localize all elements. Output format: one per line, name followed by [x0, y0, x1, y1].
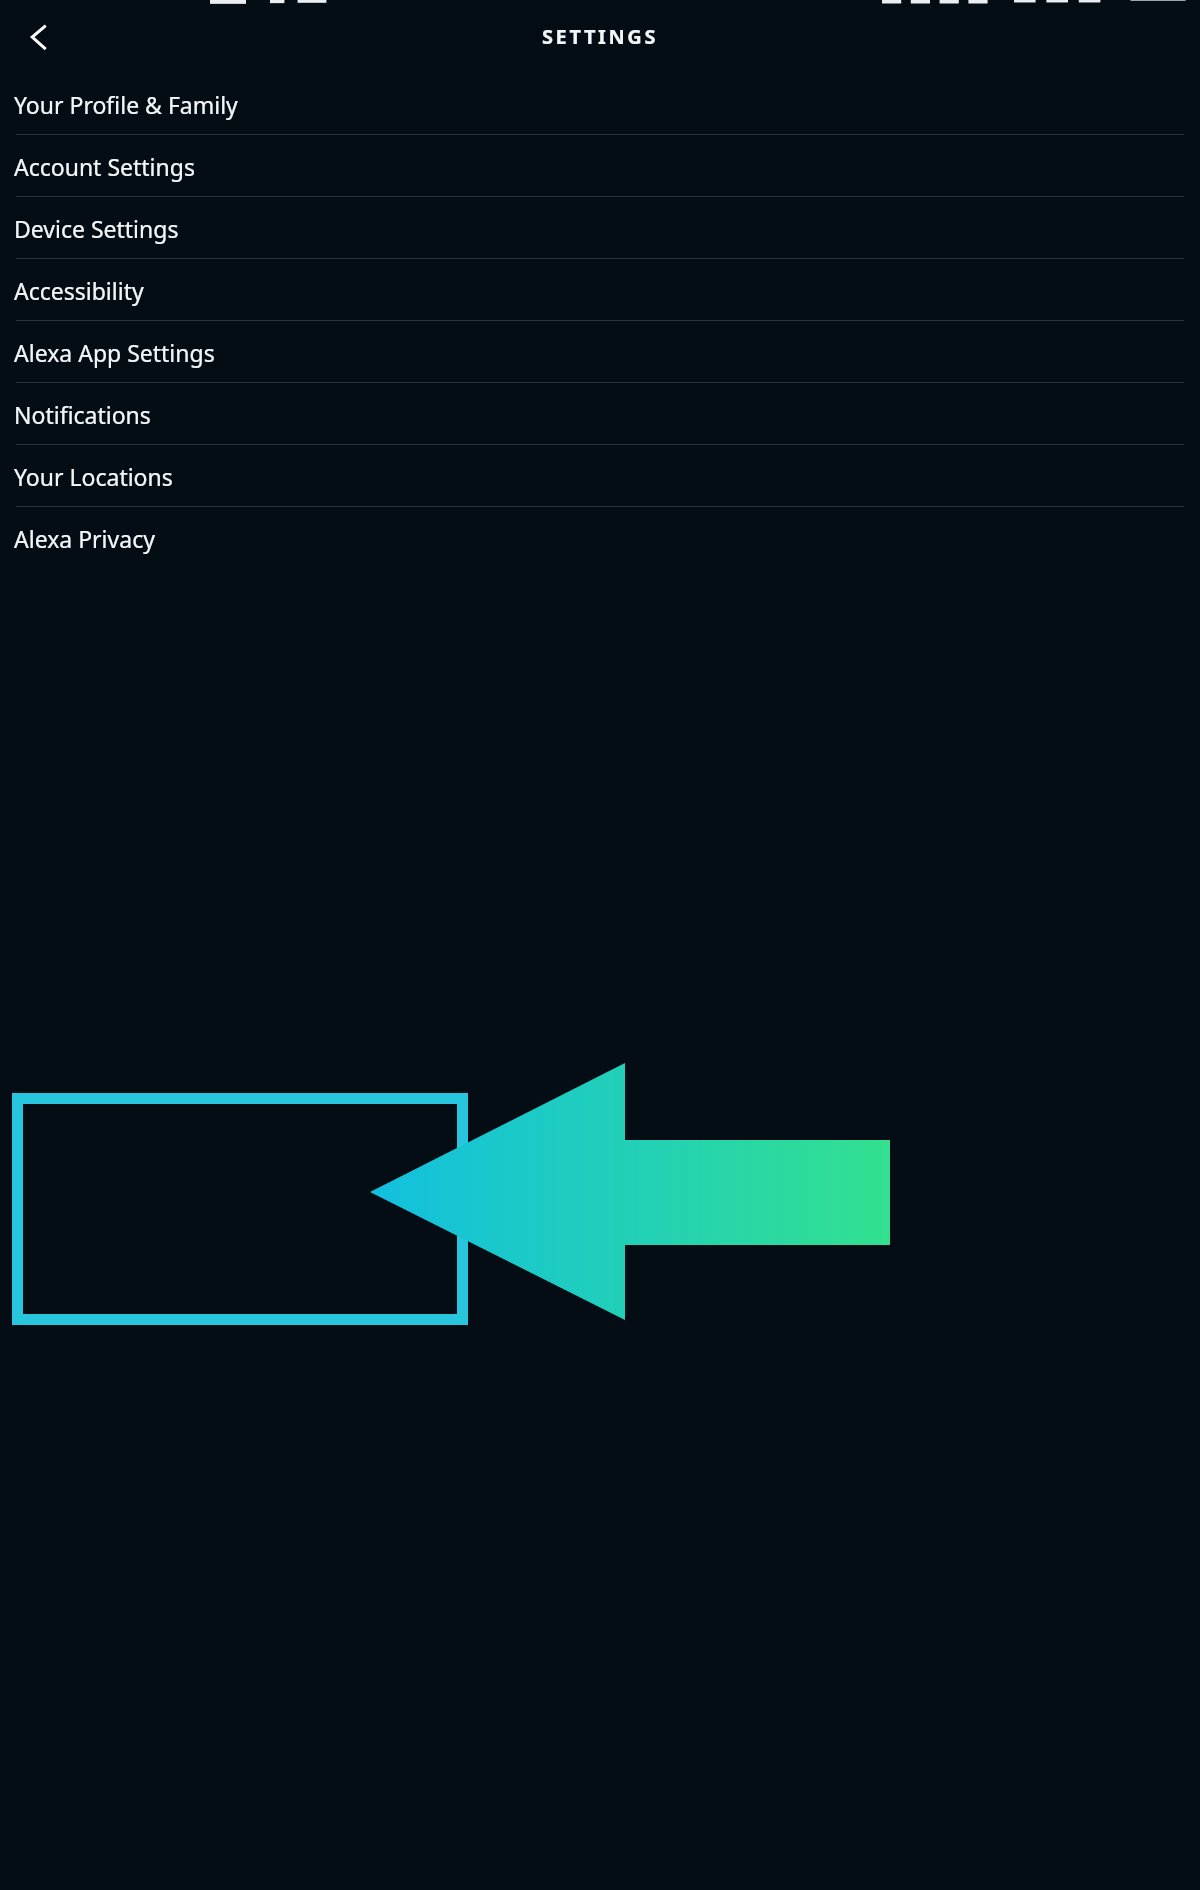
staticText: Alexa App Settings — [14, 337, 215, 368]
button[interactable]: Alexa Privacy — [0, 507, 1200, 569]
button[interactable]: Notifications — [0, 383, 1200, 445]
staticText: Notifications — [14, 399, 151, 430]
staticText: Alexa Privacy — [14, 523, 155, 554]
staticText: Account Settings — [14, 151, 195, 182]
button[interactable]: Device Settings — [0, 197, 1200, 259]
staticText: Your Profile & Family — [14, 89, 238, 120]
button[interactable]: Accessibility — [0, 259, 1200, 321]
button[interactable]: Alexa App Settings — [0, 321, 1200, 383]
button[interactable]: Your Locations — [0, 445, 1200, 507]
button[interactable]: Back — [12, 9, 68, 65]
staticText: Device Settings — [14, 213, 179, 244]
staticText: SETTINGS — [0, 23, 1200, 50]
staticText: Your Locations — [14, 461, 173, 492]
button[interactable]: Your Profile & Family — [0, 73, 1200, 135]
staticText: Accessibility — [14, 275, 144, 306]
button[interactable]: Account Settings — [0, 135, 1200, 197]
